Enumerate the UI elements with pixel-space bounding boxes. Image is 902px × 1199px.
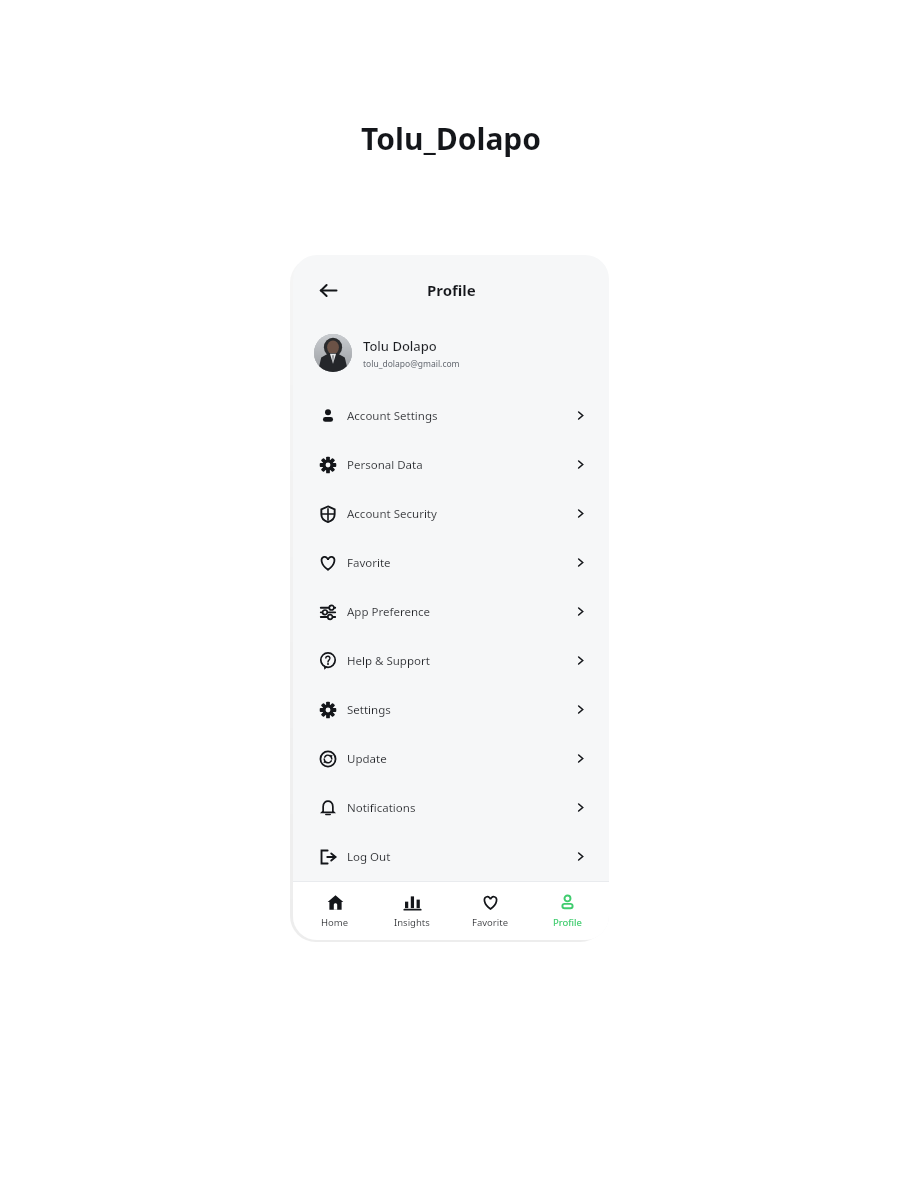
- button[interactable]: Account Settings: [293, 391, 609, 440]
- button[interactable]: Tolu Dolapo: [293, 325, 609, 381]
- button[interactable]: Update: [293, 734, 609, 783]
- button[interactable]: Favorite: [293, 538, 609, 587]
- staticText: Profile: [427, 280, 476, 300]
- staticText: Settings: [347, 702, 391, 718]
- staticText: Tolu Dolapo: [363, 337, 437, 355]
- button[interactable]: Account Security: [293, 489, 609, 538]
- staticText: Profile: [553, 916, 582, 929]
- staticText: Help & Support: [347, 653, 430, 669]
- staticText: Notifications: [347, 800, 416, 816]
- button[interactable]: Notifications: [293, 783, 609, 832]
- button[interactable]: Profile: [532, 888, 602, 935]
- button[interactable]: Log Out: [293, 832, 609, 881]
- staticText: tolu_dolapo@gmail.com: [363, 358, 460, 370]
- staticText: Tolu_Dolapo: [361, 118, 542, 159]
- staticText: Update: [347, 751, 387, 767]
- staticText: Account Security: [347, 506, 437, 522]
- button[interactable]: Help & Support: [293, 636, 609, 685]
- staticText: App Preference: [347, 604, 431, 620]
- button[interactable]: Home: [300, 888, 370, 935]
- staticText: Insights: [394, 916, 430, 929]
- button[interactable]: Personal Data: [293, 440, 609, 489]
- staticText: Favorite: [347, 555, 391, 571]
- button[interactable]: Insights: [377, 888, 447, 935]
- staticText: Log Out: [347, 849, 391, 865]
- button[interactable]: Settings: [293, 685, 609, 734]
- staticText: Favorite: [472, 916, 508, 929]
- staticText: Personal Data: [347, 457, 423, 473]
- button[interactable]: App Preference: [293, 587, 609, 636]
- staticText: Account Settings: [347, 408, 438, 424]
- staticText: Home: [321, 916, 349, 929]
- button[interactable]: Back: [309, 271, 347, 309]
- button[interactable]: Favorite: [455, 888, 525, 935]
